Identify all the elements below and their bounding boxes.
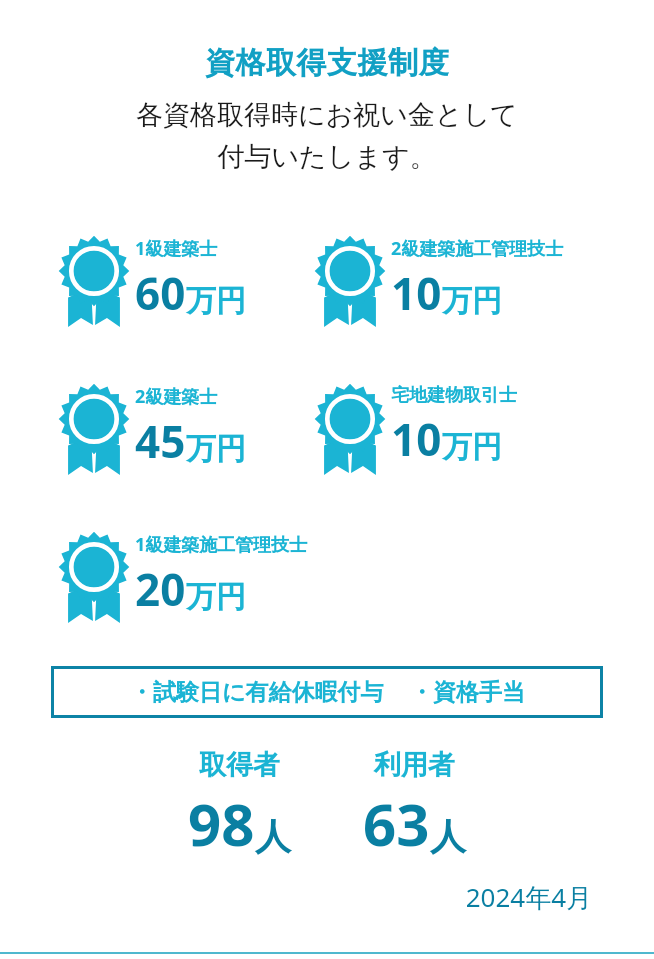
staticText: 63 bbox=[363, 784, 430, 863]
staticText: 資格取得支援制度 bbox=[0, 44, 654, 82]
staticText: 98 bbox=[188, 784, 255, 863]
button[interactable]: ・試験日に有給休暇付与 bbox=[51, 666, 603, 718]
button[interactable]: Award medal bbox=[314, 228, 569, 328]
staticText: ・試験日に有給休暇付与 bbox=[130, 678, 384, 707]
staticText: 万円 bbox=[442, 282, 502, 320]
staticText: 万円 bbox=[186, 282, 246, 320]
button[interactable]: Award medal bbox=[58, 228, 313, 328]
staticText: 万円 bbox=[442, 428, 502, 466]
staticText: 利用者 bbox=[374, 748, 455, 782]
staticText: 45 bbox=[135, 411, 186, 471]
staticText: 1級建築士 bbox=[135, 236, 218, 261]
staticText: 2024年4月 bbox=[0, 879, 592, 915]
other: Award medal bbox=[314, 228, 386, 328]
staticText: 人 bbox=[430, 814, 466, 859]
other: Award medal bbox=[314, 376, 386, 476]
staticText: 1級建築施工管理技士 bbox=[135, 532, 308, 557]
other: Award medal bbox=[58, 228, 130, 328]
staticText: 20 bbox=[135, 559, 186, 619]
staticText: 人 bbox=[255, 814, 291, 859]
button[interactable]: Award medal bbox=[58, 376, 313, 476]
staticText: 宅地建物取引士 bbox=[391, 384, 517, 407]
staticText: 10 bbox=[391, 409, 442, 469]
staticText: 取得者 bbox=[199, 748, 280, 782]
staticText: ・資格手当 bbox=[410, 678, 525, 707]
staticText: 10 bbox=[391, 263, 442, 323]
staticText: 60 bbox=[135, 263, 186, 323]
other: Award medal bbox=[58, 376, 130, 476]
staticText: 2級建築士 bbox=[135, 384, 218, 409]
staticText: 万円 bbox=[186, 578, 246, 616]
staticText: 2級建築施工管理技士 bbox=[391, 236, 564, 261]
staticText: 各資格取得時にお祝い金として 付与いたします。 bbox=[0, 98, 654, 174]
staticText: 万円 bbox=[186, 430, 246, 468]
button[interactable]: Award medal bbox=[314, 376, 569, 476]
button[interactable]: Award medal bbox=[58, 524, 313, 624]
other: Award medal bbox=[58, 524, 130, 624]
